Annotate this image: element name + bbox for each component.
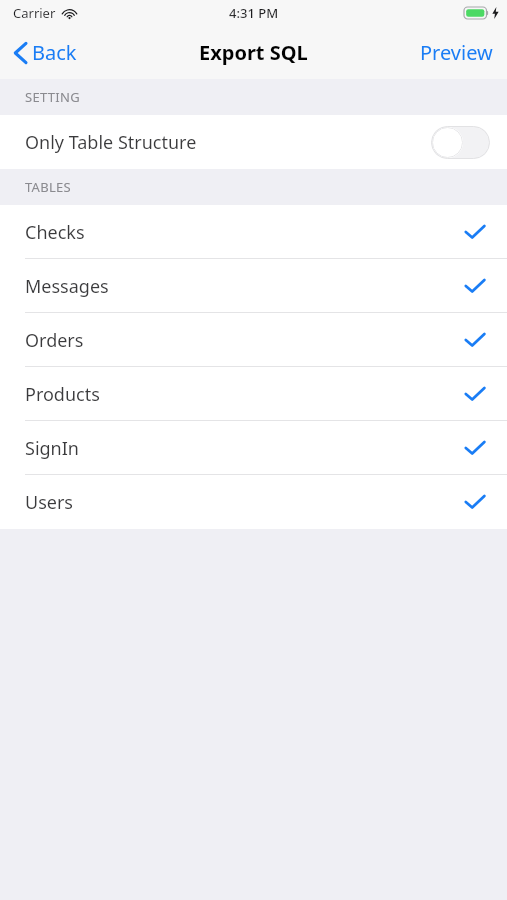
staticText: Messages [25,274,109,299]
button[interactable]: Back [0,31,89,74]
button[interactable]: Users [0,475,507,529]
button[interactable]: Products [0,367,507,421]
staticText: Orders [25,328,84,353]
button[interactable]: Orders [0,313,507,367]
staticText: TABLES [25,178,72,196]
staticText: Checks [25,220,85,245]
staticText: SignIn [25,436,79,461]
staticText: Back [32,39,77,66]
staticText: Only Table Structure [25,130,197,155]
button[interactable]: Checks [0,205,507,259]
staticText: Products [25,382,100,407]
button[interactable]: Only Table Structure toggle [431,126,490,159]
button[interactable]: Only Table Structure [0,115,507,169]
staticText: Export SQL [199,39,308,66]
button[interactable]: Messages [0,259,507,313]
staticText: 4:31 PM [229,4,279,22]
staticText: Carrier [13,4,56,22]
staticText: Users [25,490,73,515]
button[interactable]: Preview [408,31,507,74]
button[interactable]: SignIn [0,421,507,475]
staticText: SETTING [25,88,80,106]
staticText: Preview [420,39,493,66]
